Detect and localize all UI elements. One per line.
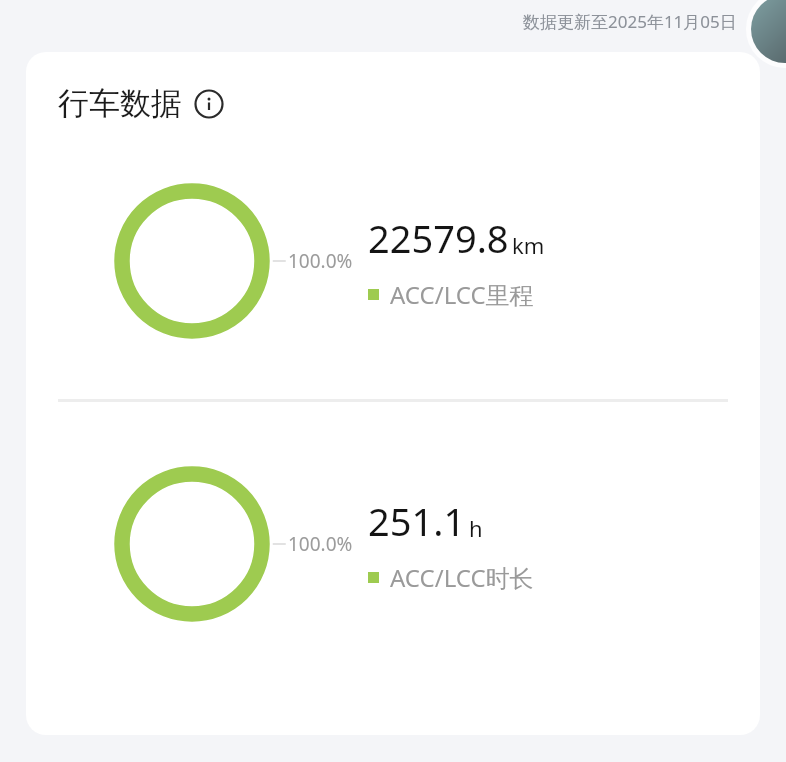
staticText: h: [469, 513, 483, 543]
staticText: 数据更新至2025年11月05日: [523, 10, 737, 33]
button[interactable]: Floating assistant: [751, 0, 786, 63]
staticText: 22579.8: [368, 212, 509, 264]
staticText: ACC/LCC里程: [390, 278, 534, 311]
button[interactable]: 100.0%: [26, 444, 760, 644]
staticText: 251.1: [368, 495, 466, 547]
staticText: 100.0%: [288, 248, 353, 274]
staticText: km: [512, 230, 545, 260]
staticText: 行车数据: [58, 84, 182, 123]
button[interactable]: 100.0%: [26, 161, 760, 361]
staticText: ACC/LCC时长: [390, 561, 534, 594]
staticText: 100.0%: [288, 531, 353, 557]
button[interactable]: Info: [194, 89, 224, 119]
button[interactable]: 行车数据: [58, 84, 224, 123]
